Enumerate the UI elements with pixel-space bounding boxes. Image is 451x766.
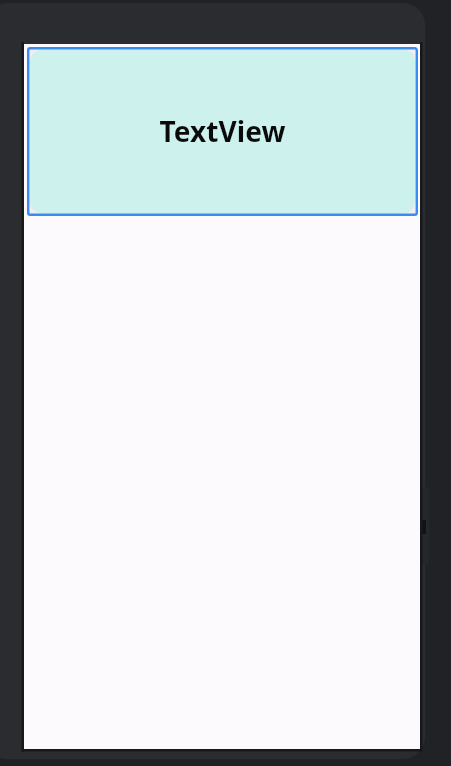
button[interactable]: TextView bbox=[27, 47, 418, 216]
staticText: TextView bbox=[159, 112, 286, 150]
